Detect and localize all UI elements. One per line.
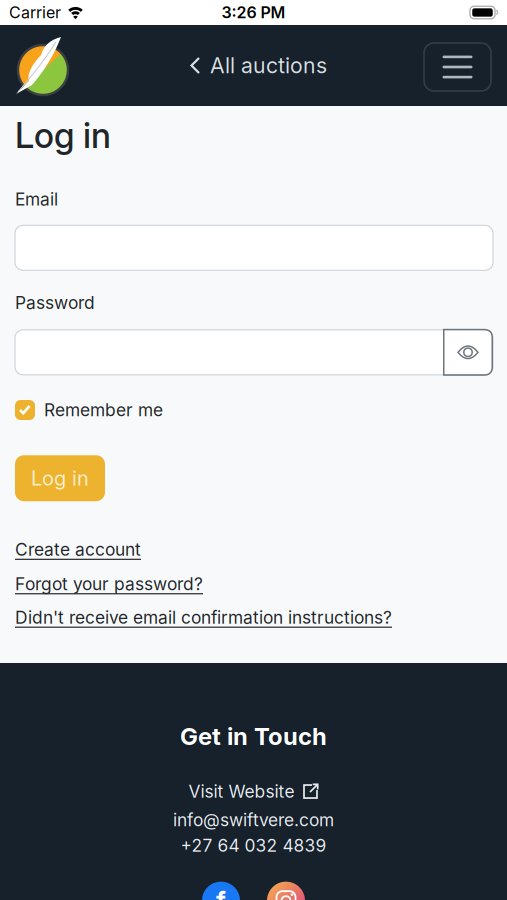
- button[interactable]: +27 64 032 4839: [180, 835, 326, 856]
- button[interactable]: Forgot your password?: [15, 574, 203, 594]
- button[interactable]: Show password: [443, 329, 493, 376]
- staticText: Get in Touch: [180, 722, 327, 750]
- staticText: Log in: [31, 466, 89, 490]
- staticText: Password: [15, 292, 95, 313]
- staticText: Remember me: [44, 400, 163, 420]
- button[interactable]: Didn't receive email confirmation instru…: [15, 607, 392, 627]
- button[interactable]: Facebook: [202, 882, 240, 900]
- button[interactable]: Remember me: [15, 400, 163, 420]
- staticText: Forgot your password?: [15, 574, 203, 594]
- staticText: Didn't receive email confirmation instru…: [15, 607, 392, 627]
- staticText: Create account: [15, 539, 141, 560]
- staticText: Visit Website: [188, 781, 294, 802]
- button[interactable]: Instagram: [267, 882, 305, 900]
- staticText: +27 64 032 4839: [180, 835, 326, 856]
- staticText: info@swiftvere.com: [173, 810, 334, 830]
- button[interactable]: Menu: [424, 40, 491, 91]
- staticText: f: [216, 886, 226, 900]
- button[interactable]: Visit Website: [188, 781, 318, 802]
- button[interactable]: info@swiftvere.com: [173, 810, 334, 830]
- staticText: 3:26 PM: [221, 3, 285, 22]
- staticText: Log in: [15, 115, 111, 156]
- button[interactable]: Create account: [15, 539, 141, 560]
- staticText: Email: [15, 189, 58, 209]
- staticText: All auctions: [210, 53, 327, 78]
- button[interactable]: All auctions: [180, 53, 327, 78]
- staticText: Carrier: [9, 3, 61, 22]
- button[interactable]: Log in: [15, 455, 105, 501]
